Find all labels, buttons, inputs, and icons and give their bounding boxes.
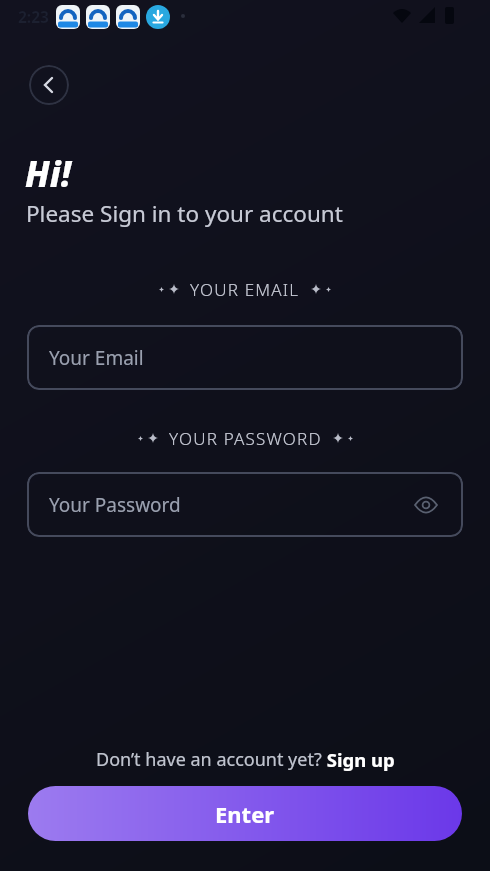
button[interactable]	[29, 65, 69, 105]
button[interactable]: Your Password	[27, 472, 463, 537]
staticText: YOUR EMAIL	[190, 278, 300, 300]
button[interactable]: Sign up	[322, 747, 395, 772]
staticText: Don’t have an account yet?	[96, 747, 322, 772]
staticText: Hi!	[25, 150, 71, 198]
staticText: Your Email	[49, 345, 144, 371]
button[interactable]: Enter	[28, 786, 462, 841]
staticText: 2:23	[18, 6, 49, 27]
button[interactable]: Your Email	[27, 325, 463, 390]
staticText: Enter	[215, 799, 275, 829]
staticText: Your Password	[49, 492, 181, 518]
staticText: YOUR PASSWORD	[169, 427, 322, 449]
staticText: Please Sign in to your account	[26, 198, 343, 229]
